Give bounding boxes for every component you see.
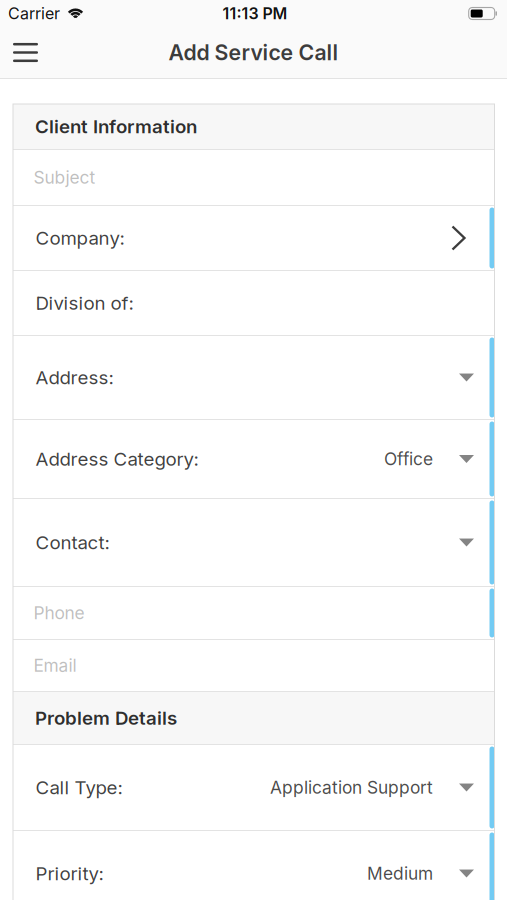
staticText: Medium (367, 863, 433, 884)
staticText: Subject (33, 167, 95, 188)
staticText: Client Information (35, 115, 197, 137)
button[interactable]: Contact: (13, 499, 494, 586)
button[interactable]: Address Category: (13, 420, 494, 498)
button[interactable]: Phone (13, 587, 494, 639)
staticText: Carrier (8, 4, 60, 23)
staticText: Add Service Call (168, 40, 338, 65)
staticText: Application Support (270, 777, 433, 798)
button[interactable]: Subject (13, 150, 494, 205)
staticText: Address: (35, 366, 113, 388)
staticText: Company: (35, 227, 124, 249)
staticText: Office (384, 449, 433, 469)
staticText: Contact: (35, 531, 109, 553)
staticText: Division of: (35, 292, 133, 314)
staticText: Problem Details (35, 707, 177, 729)
staticText: 11:13 PM (222, 4, 287, 23)
button[interactable]: Company: (13, 206, 494, 270)
staticText: Phone (33, 603, 84, 623)
button[interactable]: Call Type: (13, 745, 494, 830)
button[interactable]: Priority: (13, 831, 494, 900)
staticText: Address Category: (35, 448, 198, 470)
button[interactable]: Menu (0, 28, 50, 76)
staticText: Email (33, 655, 76, 676)
staticText: Call Type: (35, 776, 122, 798)
button[interactable]: Email (13, 640, 494, 691)
button[interactable]: Address: (13, 336, 494, 419)
staticText: Priority: (35, 862, 103, 884)
